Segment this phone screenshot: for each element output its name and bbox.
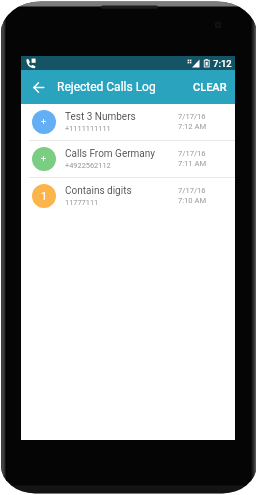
staticText: 7:10 AM xyxy=(178,196,207,205)
staticText: Contains digits xyxy=(65,185,132,197)
button[interactable]: + xyxy=(21,104,235,140)
staticText: + xyxy=(41,117,47,128)
button[interactable]: + xyxy=(21,141,235,177)
button[interactable]: CLEAR xyxy=(185,73,235,102)
staticText: Test 3 Numbers xyxy=(65,111,136,123)
staticText: CLEAR xyxy=(193,81,227,94)
staticText: 7:11 AM xyxy=(178,159,207,168)
staticText: 7:12 AM xyxy=(178,122,207,131)
button[interactable]: Back xyxy=(21,70,55,104)
button[interactable]: 1 xyxy=(21,178,235,214)
staticText: 11777111 xyxy=(65,198,99,207)
staticText: +1111111111 xyxy=(65,124,111,133)
staticText: 7/17/16 xyxy=(178,186,206,195)
staticText: Rejected Calls Log xyxy=(57,80,156,94)
staticText: 7:12 xyxy=(213,58,232,69)
staticText: 7/17/16 xyxy=(178,149,206,158)
staticText: Calls From Germany xyxy=(65,148,156,160)
staticText: + xyxy=(41,154,47,165)
staticText: +4922562112 xyxy=(65,161,111,170)
staticText: 7/17/16 xyxy=(178,112,206,121)
staticText: 1 xyxy=(41,190,48,203)
